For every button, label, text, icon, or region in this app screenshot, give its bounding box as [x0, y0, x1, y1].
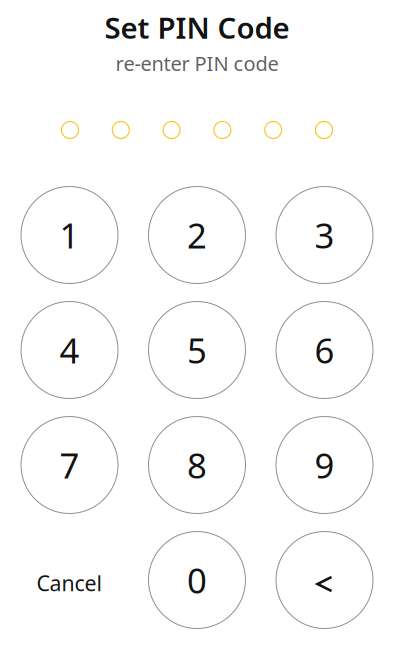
- staticText: 4: [59, 327, 79, 373]
- button[interactable]: 8: [148, 416, 245, 513]
- button[interactable]: 0: [148, 531, 245, 628]
- button[interactable]: 7: [21, 416, 118, 513]
- button[interactable]: 4: [21, 301, 118, 398]
- button[interactable]: 5: [148, 301, 245, 398]
- staticText: 6: [314, 327, 334, 373]
- button[interactable]: 3: [276, 186, 373, 283]
- button[interactable]: 2: [148, 186, 245, 283]
- staticText: re-enter PIN code: [115, 50, 278, 77]
- staticText: Cancel: [36, 569, 102, 597]
- staticText: 5: [187, 327, 207, 373]
- staticText: 8: [187, 442, 207, 488]
- staticText: 7: [59, 442, 79, 488]
- staticText: 9: [314, 442, 334, 488]
- staticText: 1: [59, 212, 79, 258]
- staticText: 0: [187, 557, 207, 603]
- button[interactable]: 9: [276, 416, 373, 513]
- staticText: 3: [314, 212, 334, 258]
- button[interactable]: 6: [276, 301, 373, 398]
- button[interactable]: Delete: [276, 531, 373, 628]
- staticText: 2: [187, 212, 207, 258]
- staticText: Set PIN Code: [104, 8, 289, 47]
- button[interactable]: 1: [21, 186, 118, 283]
- button[interactable]: Cancel: [21, 531, 118, 628]
